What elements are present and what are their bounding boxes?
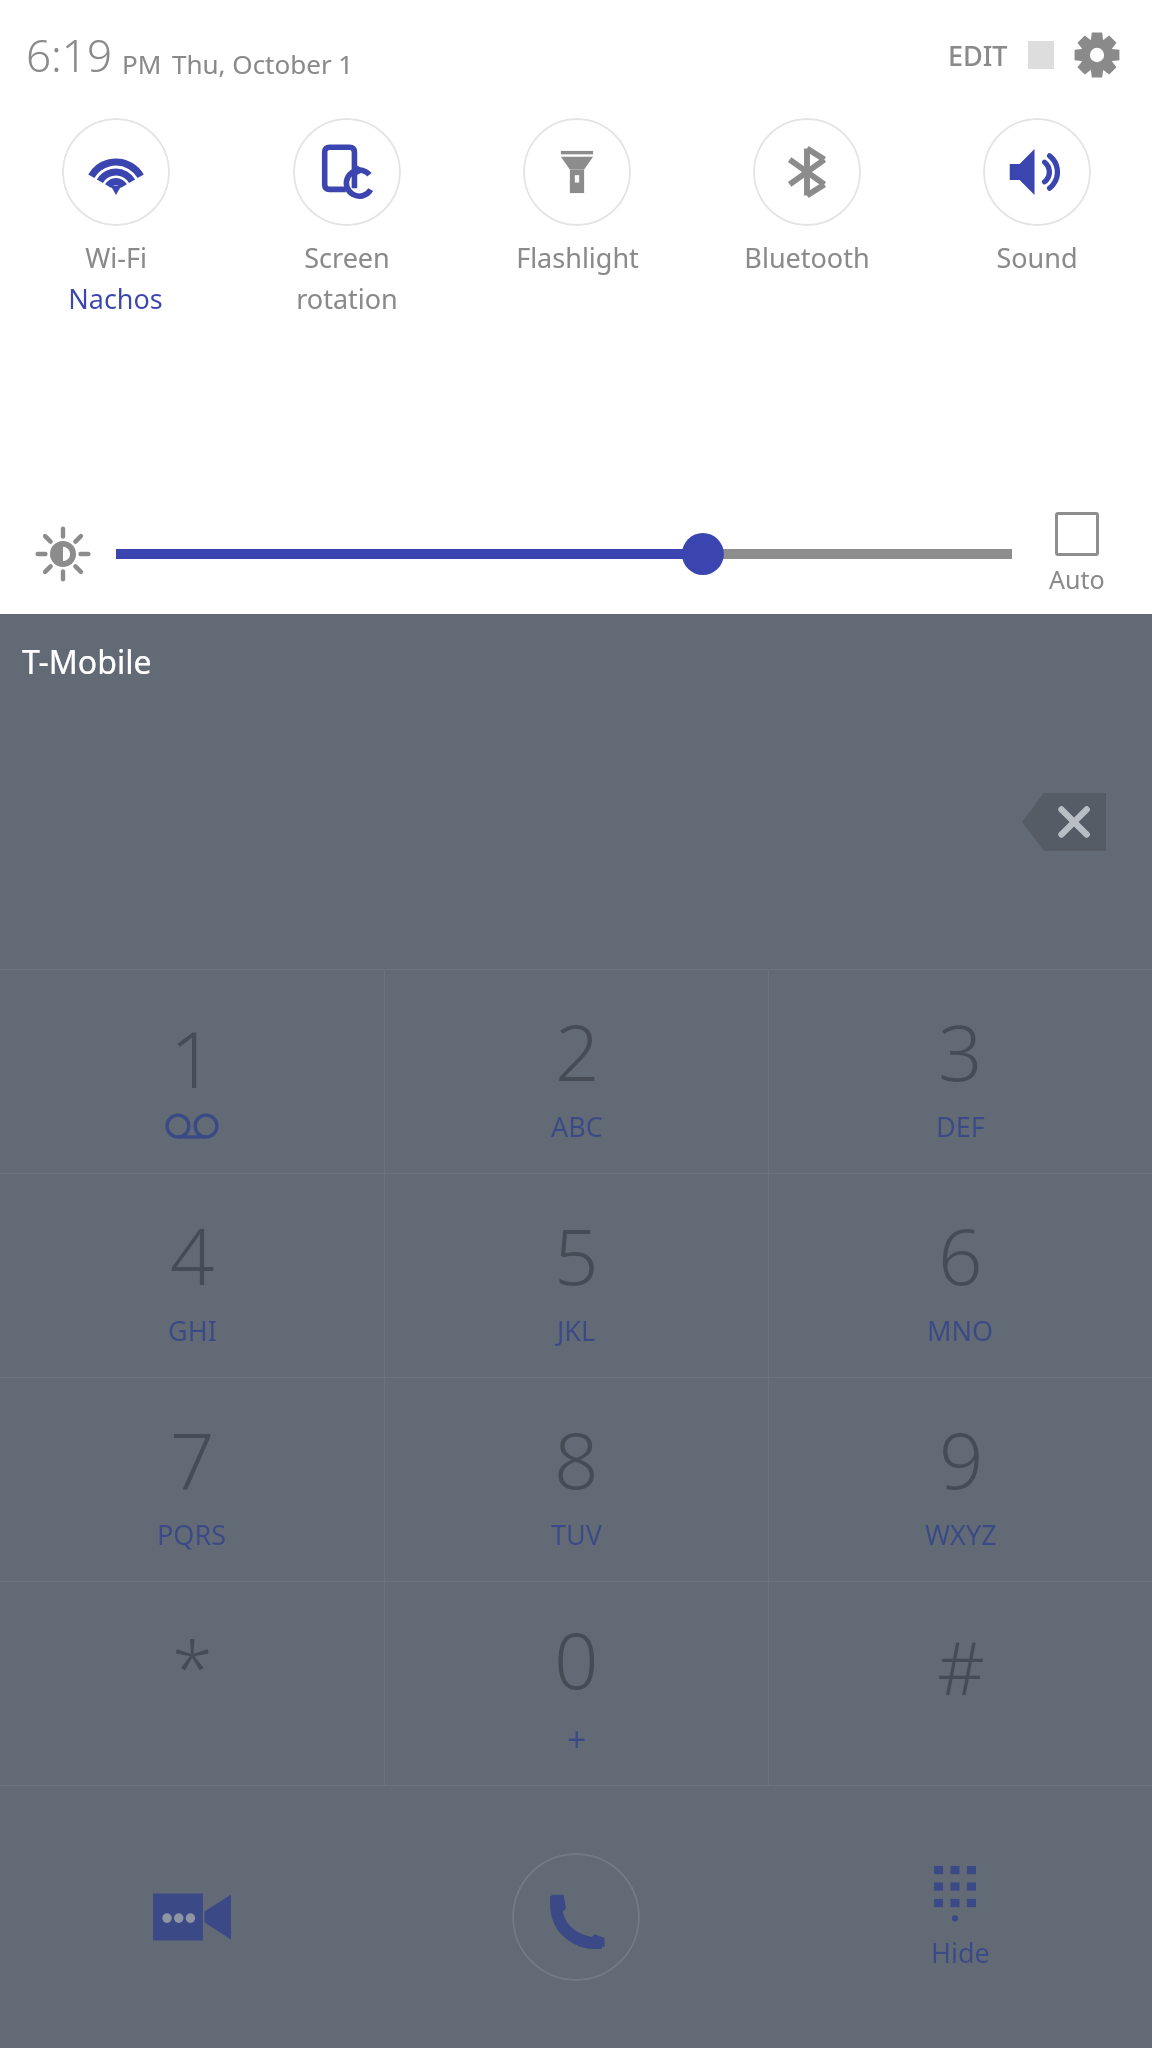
staticText: 6 xyxy=(938,1202,983,1308)
staticText: MNO xyxy=(927,1312,994,1349)
staticText: GHI xyxy=(168,1312,217,1349)
staticText: TUV xyxy=(551,1516,602,1553)
button[interactable]: 4 xyxy=(0,1174,384,1377)
button[interactable] xyxy=(116,519,1012,589)
button[interactable]: 7 xyxy=(0,1378,384,1581)
staticText: DEF xyxy=(936,1108,985,1145)
staticText: 3 xyxy=(938,998,983,1104)
button[interactable]: Auto xyxy=(1022,512,1132,596)
staticText: 2 xyxy=(555,998,600,1104)
staticText: rotation xyxy=(296,280,398,317)
staticText: Auto xyxy=(1049,562,1105,596)
staticText: T-Mobile xyxy=(22,640,152,684)
button[interactable]: 3 xyxy=(769,970,1152,1173)
staticText: 4 xyxy=(170,1202,215,1308)
staticText: 8 xyxy=(554,1406,599,1512)
staticText: WXYZ xyxy=(925,1516,997,1553)
button[interactable]: Video call xyxy=(0,1786,384,2048)
button[interactable]: 8 xyxy=(385,1378,768,1581)
button[interactable]: Bluetooth xyxy=(692,114,922,276)
staticText: Bluetooth xyxy=(744,239,870,276)
staticText: Thu, October 1 xyxy=(172,46,354,81)
button[interactable]: Backspace xyxy=(1022,793,1106,851)
staticText: Sound xyxy=(996,239,1078,276)
staticText: 7 xyxy=(170,1406,215,1512)
staticText: 1 xyxy=(170,1005,215,1111)
button[interactable]: 6 xyxy=(769,1174,1152,1377)
button[interactable]: 9 xyxy=(769,1378,1152,1581)
staticText: PM xyxy=(122,46,162,81)
staticText: JKL xyxy=(557,1312,596,1349)
staticText: 6:19 xyxy=(26,25,113,85)
button[interactable]: 1 xyxy=(0,970,384,1173)
staticText: Hide xyxy=(931,1934,990,1971)
button[interactable]: Settings xyxy=(1062,20,1132,90)
button[interactable]: Hide xyxy=(768,1786,1152,2048)
staticText: EDIT xyxy=(948,37,1008,74)
button[interactable]: EDIT xyxy=(934,27,1022,84)
staticText: 5 xyxy=(554,1202,599,1308)
button[interactable]: Screen xyxy=(231,114,462,317)
button[interactable]: Brightness xyxy=(20,511,106,597)
button[interactable]: Flashlight xyxy=(462,114,692,276)
staticText: 9 xyxy=(939,1406,984,1512)
staticText: ABC xyxy=(551,1108,603,1145)
button[interactable]: Call xyxy=(384,1786,768,2048)
staticText: Wi-Fi xyxy=(85,239,147,276)
button[interactable]: Wi-Fi xyxy=(0,114,231,317)
staticText: Nachos xyxy=(68,280,163,317)
button[interactable]: Sound xyxy=(922,114,1152,276)
staticText: PQRS xyxy=(157,1516,227,1553)
button[interactable]: 2 xyxy=(385,970,768,1173)
button[interactable]: 5 xyxy=(385,1174,768,1377)
staticText: Flashlight xyxy=(516,239,639,276)
staticText: 0 xyxy=(554,1606,599,1712)
staticText: * xyxy=(172,1616,213,1717)
staticText: # xyxy=(937,1616,985,1717)
staticText: Screen xyxy=(304,239,390,276)
staticText: + xyxy=(567,1716,587,1762)
